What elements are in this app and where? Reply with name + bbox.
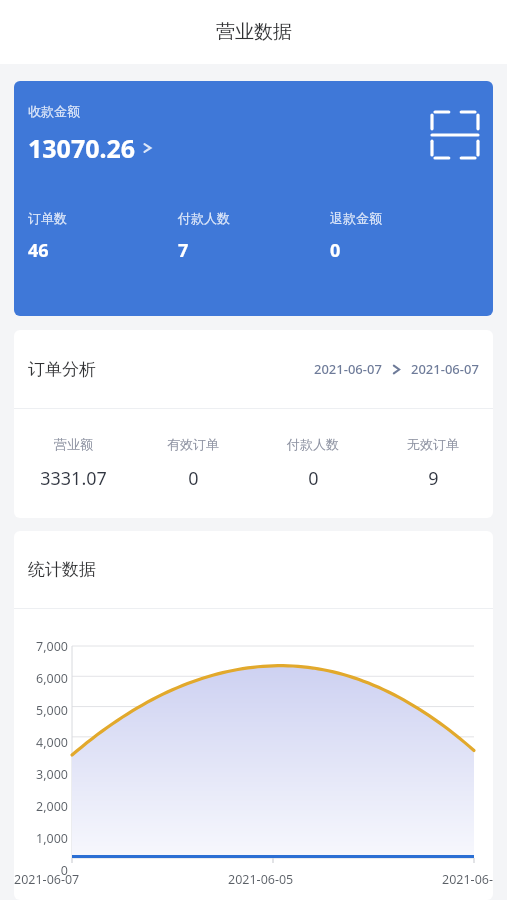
staticText: 2021-06-07	[14, 871, 80, 888]
staticText: 13070.26	[28, 131, 136, 165]
staticText: 2021-06-07	[314, 360, 382, 378]
staticText: 订单数	[28, 210, 67, 226]
staticText: 0	[308, 466, 319, 491]
button[interactable]: 收款金额	[14, 81, 493, 316]
staticText: 2,000	[14, 798, 68, 815]
staticText: 46	[28, 238, 49, 263]
staticText: 收款金额	[28, 103, 80, 119]
staticText: 0	[188, 466, 199, 491]
staticText: 订单分析	[28, 359, 96, 380]
staticText: 1,000	[14, 830, 68, 847]
staticText: 7	[178, 238, 189, 263]
staticText: 无效订单	[407, 436, 459, 452]
staticText: 2021-06-	[442, 871, 493, 888]
staticText: 0	[14, 862, 68, 879]
staticText: 统计数据	[28, 559, 96, 580]
staticText: 3,000	[14, 766, 68, 783]
button[interactable]: 有效订单	[133, 436, 253, 491]
button[interactable]: 订单分析	[14, 330, 493, 408]
staticText: 有效订单	[167, 436, 219, 452]
staticText: 7,000	[14, 638, 68, 655]
staticText: 付款人数	[178, 210, 230, 226]
staticText: 9	[428, 466, 439, 491]
staticText: 营业数据	[216, 20, 292, 44]
staticText: 4,000	[14, 734, 68, 751]
staticText: 2021-06-05	[228, 871, 294, 888]
staticText: 2021-06-07	[411, 360, 479, 378]
staticText: 营业额	[54, 436, 93, 452]
button[interactable]: 付款人数	[253, 436, 373, 491]
staticText: 0	[330, 238, 341, 263]
staticText: 6,000	[14, 670, 68, 687]
button[interactable]: 统计数据	[14, 531, 493, 608]
button[interactable]: 无效订单	[373, 436, 493, 491]
staticText: 退款金额	[330, 210, 382, 226]
button[interactable]: Scan	[432, 112, 478, 158]
staticText: 付款人数	[287, 436, 339, 452]
staticText: 3331.07	[40, 466, 107, 491]
button[interactable]: 营业额	[14, 436, 133, 491]
staticText: 5,000	[14, 702, 68, 719]
